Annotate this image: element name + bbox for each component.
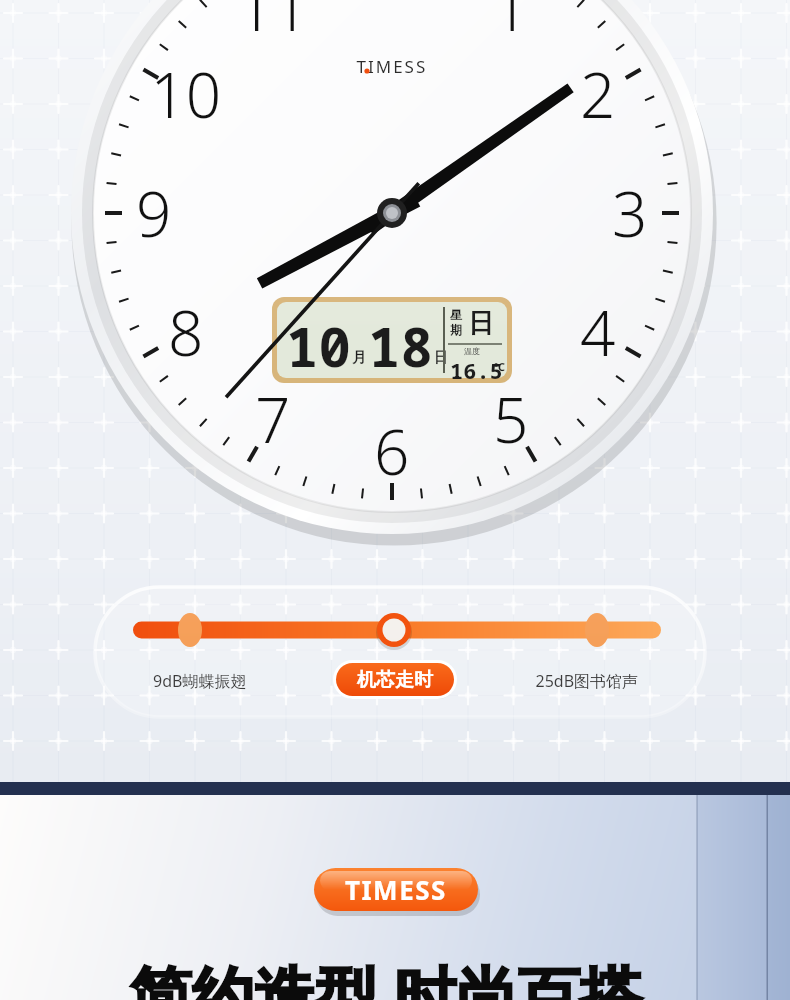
button[interactable]: Wall clock preview [0, 0, 790, 1000]
